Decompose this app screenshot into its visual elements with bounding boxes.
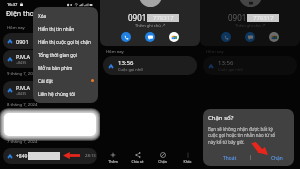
- staticText: P.M.A: [16, 53, 31, 60]
- button[interactable]: Cài đặt: [33, 74, 98, 87]
- button[interactable]: Video call: [269, 32, 279, 42]
- staticText: 779317: [153, 14, 174, 22]
- button[interactable]: Khác: [175, 150, 200, 166]
- button[interactable]: Call: [121, 32, 131, 42]
- button[interactable]: Chia sẻ: [125, 150, 150, 166]
- staticText: Thêm ghi chú: [235, 23, 261, 28]
- button[interactable]: +849: [3, 148, 97, 164]
- staticText: 13:56: [218, 59, 234, 67]
- button[interactable]: Chặn: [150, 150, 175, 166]
- button[interactable]: Hiển thị cuộc gọi bị chặn: [33, 35, 98, 48]
- button[interactable]: Chia sẻ: [225, 150, 250, 166]
- staticText: Thêm ghi chú: [135, 23, 161, 28]
- staticText: Chặn: [158, 159, 167, 164]
- staticText: Cuộc gọi nhỡ: [218, 67, 243, 72]
- staticText: Hiển thị cuộc gọi bị chặn: [38, 39, 91, 45]
- staticText: Cài đặt: [38, 78, 53, 84]
- button[interactable]: Liên hệ chúng tôi: [33, 87, 98, 100]
- staticText: 779317: [253, 14, 274, 22]
- staticText: Thoát: [223, 155, 237, 162]
- staticText: Chặn số?: [208, 114, 234, 122]
- button[interactable]: Thêm: [100, 150, 125, 166]
- button[interactable]: 13:56: [103, 56, 197, 75]
- button[interactable]: Khác: [275, 150, 300, 166]
- staticText: 7 tháng 7, 2024: [7, 139, 38, 145]
- staticText: Hôm nay: [206, 49, 224, 55]
- staticText: Hôm nay: [106, 49, 124, 55]
- staticText: +8435: [16, 60, 27, 65]
- staticText: Bạn sẽ không nhận được bất kỳ cuộc gọi h…: [208, 126, 281, 145]
- staticText: 0901: [228, 12, 247, 23]
- button[interactable]: 13:56: [203, 56, 297, 75]
- button[interactable]: Tổng thời gian gọi: [33, 48, 98, 61]
- staticText: 0901: [128, 12, 147, 23]
- staticText: Thêm: [108, 159, 118, 164]
- staticText: Chặn: [271, 155, 283, 162]
- staticText: 8 tháng 7, 2024: [7, 102, 38, 108]
- button[interactable]: Hiển thị tin nhắn: [33, 22, 98, 35]
- staticText: +849: [16, 153, 28, 160]
- staticText: Hiển thị tin nhắn: [38, 26, 75, 32]
- button[interactable]: Chặn: [250, 150, 275, 166]
- staticText: P.M.A: [16, 84, 31, 91]
- button[interactable]: P.M.A: [3, 81, 97, 99]
- staticText: Chia sẻ: [231, 159, 244, 164]
- button[interactable]: Message: [245, 32, 255, 42]
- staticText: 0901: [16, 38, 29, 45]
- staticText: 16:37: [7, 2, 18, 7]
- button[interactable]: Message: [145, 32, 155, 42]
- button[interactable]: Thoát: [221, 153, 239, 164]
- staticText: Hôm nay: [7, 25, 25, 31]
- staticText: 28:13: [85, 153, 96, 159]
- button[interactable]: Chặn: [269, 153, 285, 164]
- staticText: Điện thoại: [6, 9, 40, 19]
- staticText: Xóa: [38, 13, 47, 19]
- button[interactable]: Thêm: [200, 150, 225, 166]
- button[interactable]: 0901: [3, 33, 97, 49]
- staticText: 13:56: [118, 59, 134, 67]
- staticText: Cuộc gọi nhỡ: [118, 67, 143, 72]
- staticText: +8435: [16, 91, 27, 96]
- button[interactable]: P.M.A: [3, 50, 97, 68]
- button[interactable]: Video call: [169, 32, 179, 42]
- staticText: Khác: [183, 159, 192, 164]
- staticText: Tổng thời gian gọi: [38, 52, 77, 58]
- button[interactable]: Xóa: [33, 9, 98, 22]
- staticText: Liên hệ chúng tôi: [38, 91, 76, 97]
- button[interactable]: Call: [221, 32, 231, 42]
- staticText: Mở ra bàn phím: [38, 65, 73, 71]
- staticText: 9 tháng 7, 2024: [7, 71, 38, 77]
- button[interactable]: Mở ra bàn phím: [33, 61, 98, 74]
- staticText: Chia sẻ: [131, 159, 144, 164]
